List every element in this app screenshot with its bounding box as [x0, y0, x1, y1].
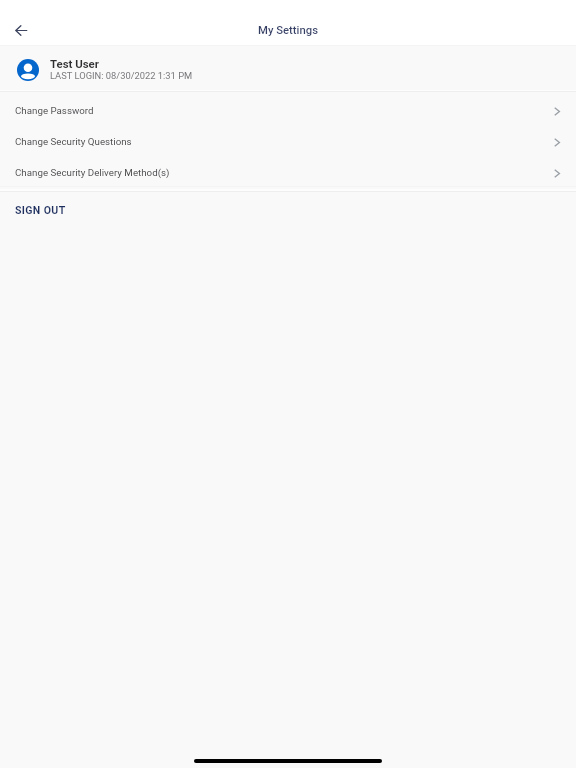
button[interactable]: Change Password [0, 92, 576, 123]
staticText: LAST LOGIN: 08/30/2022 1:31 PM [50, 70, 193, 81]
staticText: Change Security Questions [15, 136, 132, 147]
button[interactable]: Change Security Delivery Method(s) [0, 154, 576, 185]
staticText: Change Security Delivery Method(s) [15, 167, 170, 178]
staticText: Test User [50, 57, 99, 70]
staticText: SIGN OUT [15, 204, 66, 216]
button[interactable]: Test User [0, 46, 576, 91]
button[interactable]: SIGN OUT [0, 196, 576, 224]
button[interactable]: Change Security Questions [0, 123, 576, 154]
staticText: My Settings [258, 24, 319, 37]
button[interactable]: Back [6, 15, 36, 45]
staticText: Change Password [15, 105, 94, 116]
